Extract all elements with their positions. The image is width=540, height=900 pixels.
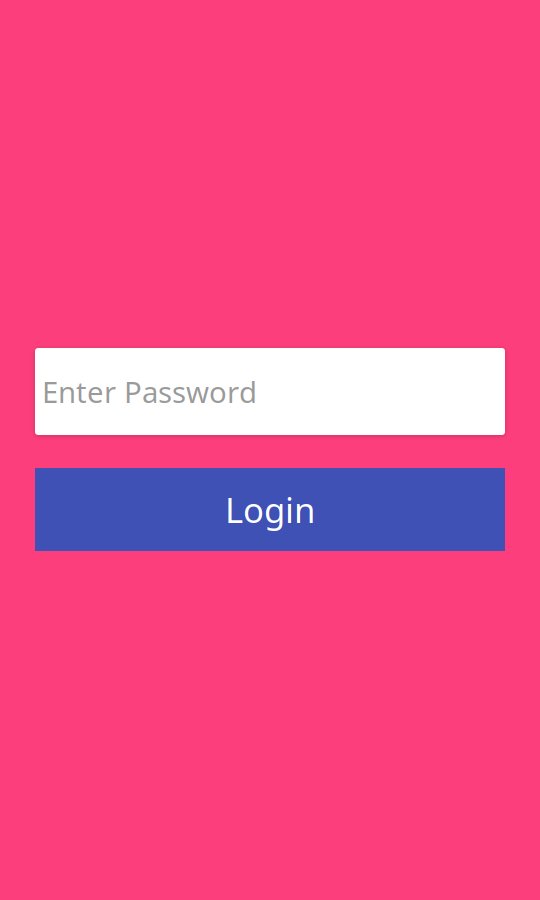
button[interactable]: Login [35, 468, 505, 551]
staticText: Login [225, 486, 315, 532]
staticText: Enter Password [42, 372, 257, 411]
button[interactable]: Enter Password [35, 348, 505, 435]
